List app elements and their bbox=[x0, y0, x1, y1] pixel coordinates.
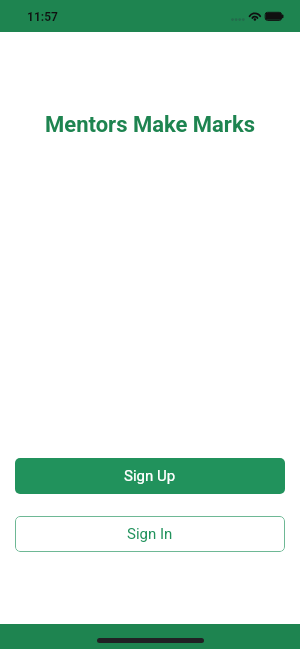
staticText: Mentors Make Marks bbox=[0, 112, 300, 138]
staticText: Sign In bbox=[127, 525, 173, 543]
button[interactable]: Sign In bbox=[15, 516, 285, 552]
staticText: Sign Up bbox=[124, 467, 176, 485]
button[interactable]: Sign Up bbox=[15, 458, 285, 494]
other: Signal, Wi-Fi and battery status bbox=[230, 0, 290, 32]
staticText: 11:57 bbox=[27, 10, 58, 24]
